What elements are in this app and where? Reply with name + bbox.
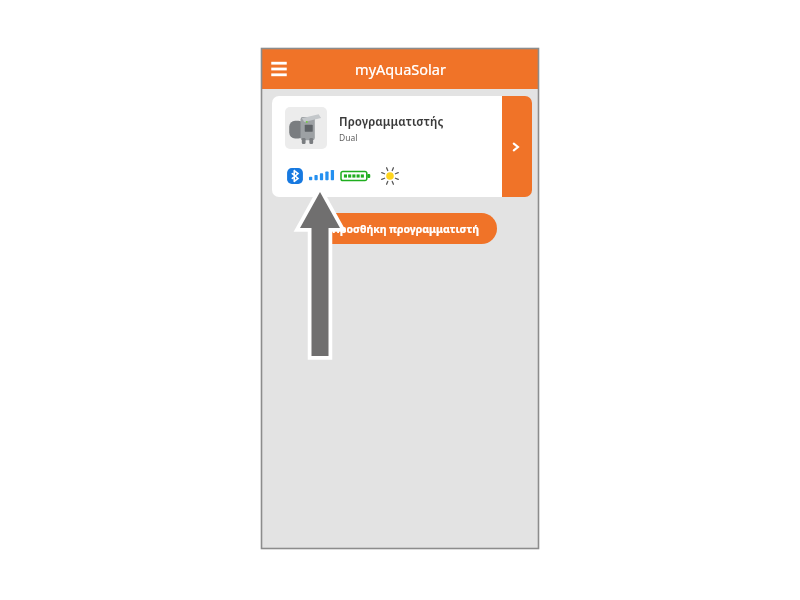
staticText: myAquaSolar xyxy=(355,59,446,79)
button[interactable]: Προγραμματιστής xyxy=(272,96,502,197)
staticText: Προσθήκη προγραμματιστή xyxy=(332,222,479,236)
staticText: Dual xyxy=(339,132,358,144)
button[interactable]: Open programmer details xyxy=(500,96,532,197)
staticText: Προγραμματιστής xyxy=(339,114,444,130)
button[interactable]: Menu xyxy=(266,56,292,82)
button[interactable]: Προσθήκη προγραμματιστή xyxy=(313,213,497,244)
